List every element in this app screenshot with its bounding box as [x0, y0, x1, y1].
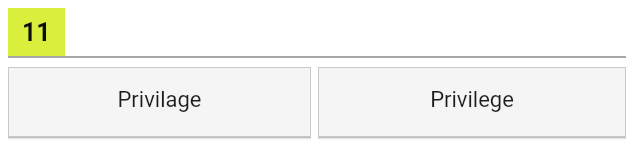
button[interactable]: Privilage	[8, 67, 311, 137]
staticText: Privilage	[117, 87, 202, 113]
staticText: 11	[22, 18, 51, 47]
button[interactable]: Privilege	[318, 67, 626, 137]
button[interactable]: 11	[8, 8, 65, 56]
staticText: Privilege	[430, 87, 514, 113]
